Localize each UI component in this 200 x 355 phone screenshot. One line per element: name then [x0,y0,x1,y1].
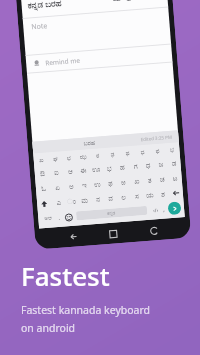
button[interactable]: ಝ [75,149,90,163]
button[interactable]: ನ [90,191,105,207]
button[interactable]: ಲ [116,189,130,205]
button[interactable]: ಈ [76,162,90,178]
button[interactable]: ಥ [119,146,135,160]
button[interactable]: Back [69,232,77,241]
staticText: ಶ [161,190,165,198]
button[interactable]: ಠ [89,148,105,162]
staticText: ಟ [172,174,178,182]
button[interactable]: ಘ [47,151,62,165]
button[interactable]: ಡ [167,155,181,171]
button[interactable]: ಬರಹ [79,139,100,147]
staticText: ಐ [54,169,59,176]
staticText: ಫ [155,148,160,154]
button[interactable]: Send [167,201,181,215]
button[interactable]: ಔ [34,165,49,182]
staticText: ತ [147,176,152,184]
staticText: ಅ [69,182,74,190]
staticText: ವ [108,194,113,202]
button[interactable]: ಮ [77,192,92,208]
button[interactable]: Shift [37,195,52,211]
button[interactable]: ಐ [48,164,63,180]
staticText: ಆ [67,168,73,175]
button[interactable]: ಛ [61,150,76,164]
staticText: ಭ [169,146,175,153]
staticText: ಯ [146,191,154,199]
button[interactable]: ಯ [142,187,156,203]
button[interactable]: ವ [103,190,118,206]
staticText: ಡ [171,159,177,167]
button[interactable]: ಢ [104,147,120,161]
button[interactable]: ಧ [134,144,150,159]
staticText: ಢ [110,151,115,157]
button[interactable]: Emoji [63,212,74,222]
staticText: . [58,214,61,222]
staticText: ಮ [81,196,88,204]
staticText: Note [31,21,49,32]
staticText: ಊ [91,165,101,173]
button[interactable]: ಇ [77,177,91,193]
button[interactable]: Space [76,206,147,220]
staticText: ಕನ್ನಡ ಬರಹ [27,0,62,11]
button[interactable]: ಖ [33,152,48,167]
button[interactable]: ಏ [49,179,64,195]
staticText: , [163,205,165,214]
staticText: ಇ [82,181,87,189]
staticText: ಗ [133,162,138,170]
button[interactable]: ಧ [141,157,155,173]
staticText: ಹ [119,163,125,171]
button[interactable]: Recent apps [150,227,158,235]
staticText: ಱ [120,178,126,186]
button[interactable]: Change color [122,0,136,4]
button[interactable]: ಊ [89,161,103,177]
button[interactable]: Backspace [168,185,183,201]
button[interactable]: ಹ [115,159,129,175]
button[interactable]: ಎ [51,194,66,210]
button[interactable]: ಱ [116,174,130,190]
staticText: ಸ [135,192,139,200]
staticText: ಂ [67,197,76,205]
button[interactable]: Remind me [26,44,172,73]
staticText: ಖ [133,177,140,185]
staticText: ಥ [125,150,130,156]
staticText: Fastest [21,258,110,293]
staticText: Remind me [45,56,80,67]
button[interactable]: ಆ [62,163,77,179]
staticText: ಚ [159,175,165,183]
staticText: ‹/› [153,207,158,214]
button[interactable]: ಟ [168,170,182,186]
button[interactable]: Comma [160,205,168,214]
button[interactable]: Symbols [150,205,160,216]
button[interactable]: Collaborator [109,0,123,5]
button[interactable]: ತ [142,172,156,188]
staticText: ಖ [39,157,44,163]
staticText: ಎ [56,199,61,206]
staticText: ಏ [55,184,60,191]
button[interactable]: ಫ [149,143,165,157]
button[interactable]: ಫ [103,175,117,191]
staticText: ಅಆ [44,215,53,222]
button[interactable]: ಅ [63,178,78,194]
staticText: ಕನ್ನಡ [107,210,116,216]
button[interactable]: ಜ [154,156,168,172]
button[interactable]: ಭ [164,142,180,156]
staticText: ಜ [158,160,164,168]
staticText: on android [21,321,76,335]
button[interactable]: Period [55,213,64,222]
button[interactable]: ಗ [128,158,142,174]
button[interactable]: ಓ [35,180,51,196]
button[interactable]: ಉ [90,176,104,192]
button[interactable]: ಭ [102,160,116,176]
button[interactable]: ಖ [129,173,143,189]
button[interactable]: ಂ [65,193,79,209]
staticText: ಲ [121,193,126,201]
button[interactable]: ಶ [155,186,169,202]
button[interactable]: Home [110,230,117,238]
button[interactable]: ಅಆ [41,215,56,222]
staticText: ಉ [94,180,101,188]
staticText: ಫ [108,179,113,187]
button[interactable]: ಸ [129,188,143,204]
button[interactable]: ಚ [155,171,169,187]
staticText: ಛ [66,155,71,161]
